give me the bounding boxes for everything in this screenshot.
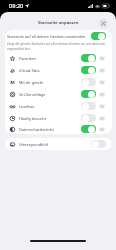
other: Neu anordnen: [100, 128, 104, 131]
button[interactable]: Mit dir geteilt: [5, 76, 112, 88]
button[interactable]: Ein: [81, 90, 96, 98]
button[interactable]: Ein: [81, 125, 96, 133]
button[interactable]: Aus: [81, 102, 96, 110]
button[interactable]: Ein: [81, 54, 96, 62]
button[interactable]: Hintergrundbild: [5, 138, 112, 150]
staticText: Häufig besucht: [19, 116, 47, 121]
other: Neu anordnen: [100, 117, 104, 120]
button[interactable]: Ein: [91, 32, 106, 40]
button[interactable]: Datenschutzbericht: [5, 124, 112, 134]
staticText: Favoriten: [19, 56, 36, 61]
button[interactable]: Ein: [81, 66, 96, 74]
button[interactable]: Aus: [81, 114, 96, 122]
button[interactable]: Aus: [91, 140, 106, 148]
staticText: Startseite auf all deinen Geräten verwen…: [7, 34, 86, 39]
staticText: Siri-Vorschläge: [19, 92, 46, 97]
other: Neu anordnen: [100, 57, 104, 60]
button[interactable]: Aus: [81, 78, 96, 86]
button[interactable]: Siri-Vorschläge: [5, 88, 112, 100]
other: Neu anordnen: [100, 93, 104, 96]
button[interactable]: Startseite auf all deinen Geräten verwen…: [5, 30, 112, 42]
button[interactable]: Leseliste: [5, 100, 112, 112]
staticText: iCloud-Tabs: [19, 68, 40, 73]
button[interactable]: iCloud-Tabs: [5, 64, 112, 76]
staticText: Mit dir geteilt: [19, 80, 43, 85]
other: Neu anordnen: [100, 81, 104, 84]
staticText: Zeige die gleiche Startseite auf allen d…: [7, 42, 111, 50]
staticText: 09:20: [9, 2, 24, 10]
staticText: Hintergrundbild: [19, 142, 48, 147]
staticText: Datenschutzbericht: [19, 127, 54, 132]
staticText: Startseite anpassen: [38, 20, 79, 26]
button[interactable]: Häufig besucht: [5, 112, 112, 124]
other: Neu anordnen: [100, 105, 104, 108]
other: Neu anordnen: [100, 69, 104, 72]
button[interactable]: Favoriten: [5, 52, 112, 64]
button[interactable]: Schließen: [99, 19, 108, 28]
staticText: Leseliste: [19, 104, 35, 109]
